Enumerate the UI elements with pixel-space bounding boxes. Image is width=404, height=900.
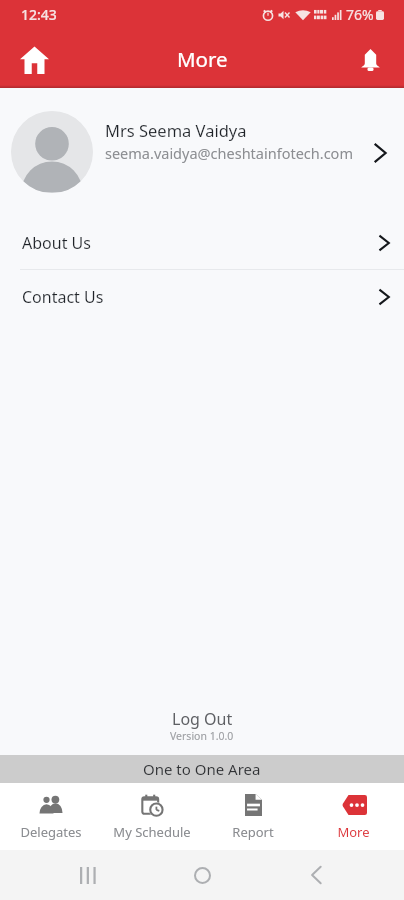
staticText: Delegates (20, 823, 82, 841)
button[interactable]: Home (182, 855, 222, 895)
staticText: Version 1.0.0 (170, 729, 234, 743)
staticText: Contact Us (22, 286, 104, 308)
button[interactable]: Contact Us (0, 270, 404, 323)
button[interactable]: Delegates (0, 783, 101, 850)
staticText: One to One Area (143, 759, 261, 779)
button[interactable]: Recents (68, 855, 108, 895)
button[interactable]: Report (202, 783, 303, 850)
button[interactable]: Back (296, 855, 336, 895)
button[interactable]: My Schedule (101, 783, 202, 850)
staticText: About Us (22, 232, 91, 254)
button[interactable]: Log Out (172, 708, 233, 730)
button[interactable]: More (303, 783, 404, 850)
staticText: 76% (346, 5, 374, 24)
button[interactable]: Home (9, 35, 59, 85)
staticText: My Schedule (113, 823, 191, 841)
staticText: Report (232, 823, 274, 841)
button[interactable]: About Us (0, 216, 404, 269)
button[interactable]: One to One Area (0, 755, 404, 783)
button[interactable]: Notifications (346, 36, 394, 84)
staticText: seema.vaidya@cheshtainfotech.com (105, 143, 353, 163)
staticText: Mrs Seema Vaidya (105, 119, 247, 141)
staticText: More (177, 45, 228, 73)
staticText: 12:43 (21, 5, 57, 24)
staticText: More (337, 823, 370, 841)
button[interactable]: Mrs Seema Vaidya (0, 88, 404, 216)
